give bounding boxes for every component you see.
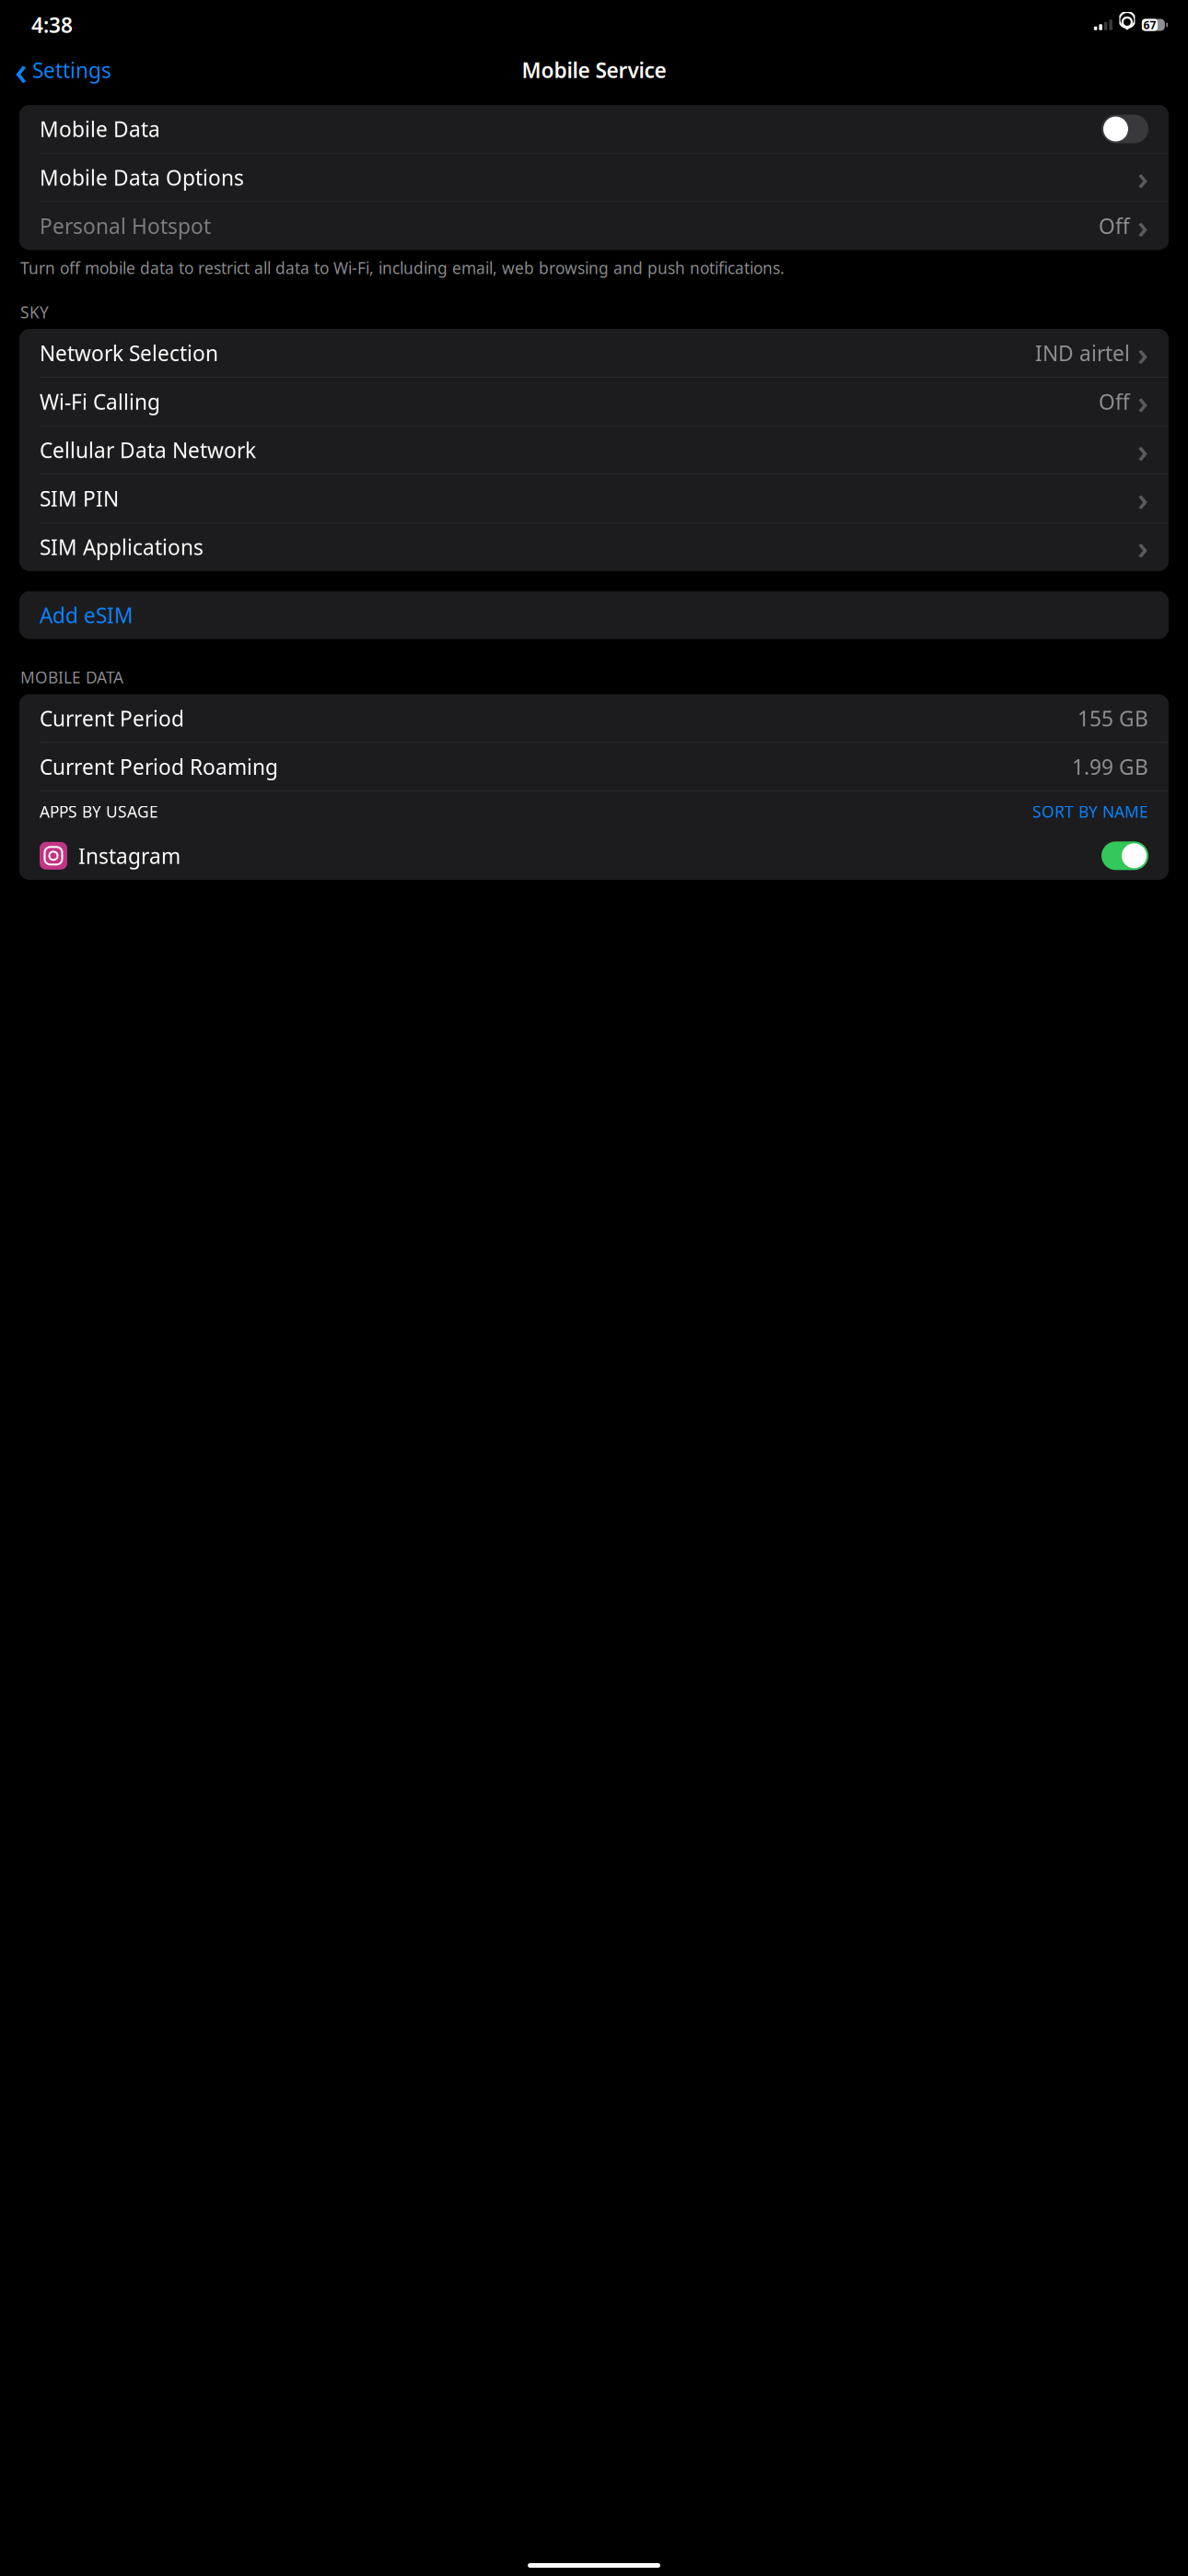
staticText: SKY	[20, 301, 49, 323]
button[interactable]: Instagram	[19, 832, 1169, 880]
button[interactable]: Personal Hotspot	[19, 202, 1169, 250]
staticText: 67	[1143, 18, 1156, 32]
staticText: APPS BY USAGE	[40, 801, 158, 822]
staticText: ›	[1137, 205, 1148, 247]
button[interactable]: ‹	[7, 50, 119, 90]
staticText: ‹	[15, 44, 28, 96]
staticText: 155 GB	[1077, 704, 1148, 732]
staticText: Mobile Service	[522, 56, 666, 84]
button[interactable]: Current Period	[19, 694, 1169, 742]
button[interactable]: Network Selection	[19, 329, 1169, 377]
button[interactable]: SIM PIN	[19, 474, 1169, 522]
staticText: Settings	[32, 56, 111, 84]
staticText: ›	[1137, 332, 1148, 374]
staticText: Current Period Roaming	[40, 753, 278, 781]
staticText: SIM Applications	[40, 533, 204, 561]
staticText: Cellular Data Network	[40, 436, 256, 464]
staticText: Turn off mobile data to restrict all dat…	[20, 257, 785, 278]
staticText: 1.99 GB	[1072, 753, 1148, 781]
staticText: Instagram	[78, 842, 181, 870]
staticText: Personal Hotspot	[40, 212, 211, 240]
staticText: SORT BY NAME	[1032, 801, 1148, 822]
button[interactable]: SIM Applications	[19, 523, 1169, 571]
button[interactable]: Add eSIM	[19, 591, 1169, 639]
button[interactable]: SORT BY NAME	[1032, 801, 1148, 822]
staticText: ›	[1137, 380, 1148, 423]
staticText: MOBILE DATA	[20, 667, 123, 688]
staticText: SIM PIN	[40, 485, 119, 512]
button[interactable]: Cellular Data Network	[19, 426, 1169, 474]
staticText: ›	[1137, 477, 1148, 520]
staticText: ›	[1137, 429, 1148, 471]
staticText: Wi-Fi Calling	[40, 388, 160, 415]
staticText: Mobile Data	[40, 115, 160, 143]
staticText: Off	[1099, 212, 1130, 240]
button[interactable]: Current Period Roaming	[19, 743, 1169, 791]
button[interactable]: Mobile Data	[19, 105, 1169, 153]
staticText: Network Selection	[40, 339, 218, 367]
staticText: Add eSIM	[40, 601, 134, 629]
staticText: ›	[1137, 156, 1148, 199]
staticText: ›	[1137, 526, 1148, 568]
staticText: 4:38	[31, 11, 73, 39]
button[interactable]: Mobile Data Options	[19, 153, 1169, 201]
button[interactable]: Wi-Fi Calling	[19, 378, 1169, 425]
staticText: IND airtel	[1035, 339, 1130, 367]
staticText: Current Period	[40, 704, 184, 732]
staticText: Off	[1099, 388, 1130, 415]
staticText: Mobile Data Options	[40, 164, 244, 191]
